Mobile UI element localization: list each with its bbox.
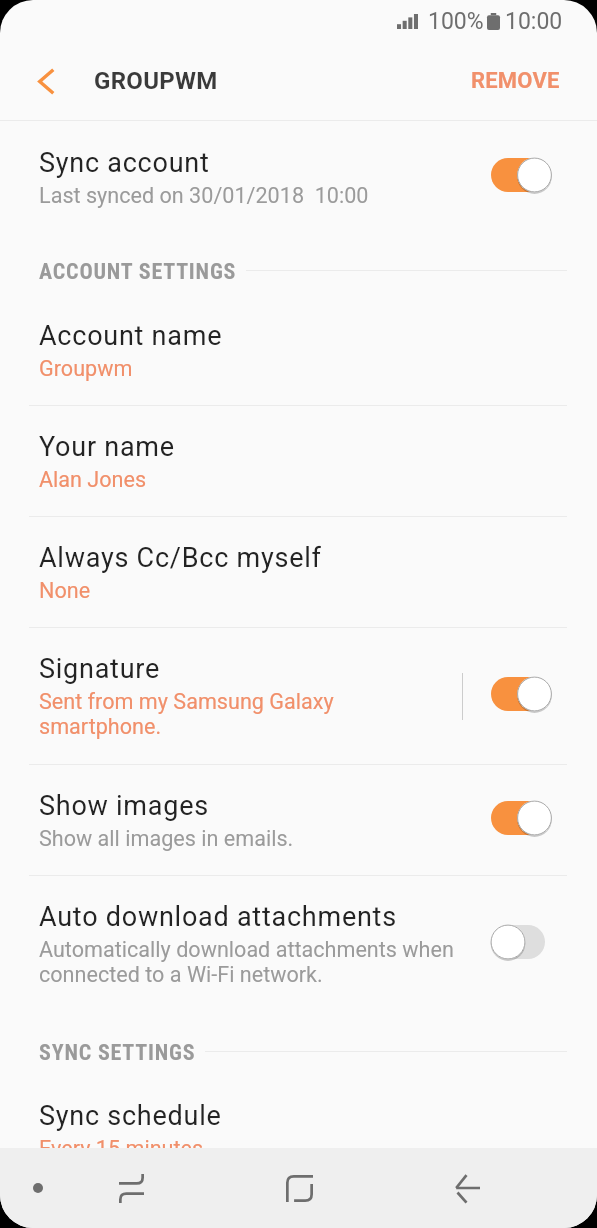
- staticText: 100%: [428, 8, 484, 35]
- button[interactable]: Hide keyboard: [13, 1163, 63, 1213]
- staticText: Last synced on 30/01/2018 10:00: [39, 183, 369, 208]
- button[interactable]: Home: [265, 1154, 333, 1222]
- staticText: Sent from my Samsung Galaxy smartphone.: [39, 689, 334, 739]
- staticText: ACCOUNT SETTINGS: [39, 259, 237, 285]
- staticText: Show images: [39, 790, 209, 822]
- staticText: None: [39, 578, 91, 603]
- staticText: Sync schedule: [39, 1100, 222, 1132]
- staticText: Show all images in emails.: [39, 826, 294, 851]
- staticText: Account name: [39, 320, 223, 352]
- button[interactable]: Sync schedule: [0, 1071, 597, 1194]
- staticText: Signature: [39, 653, 161, 685]
- button[interactable]: On: [491, 798, 553, 838]
- button[interactable]: Back: [433, 1154, 501, 1222]
- button[interactable]: Auto download attachments: [0, 876, 597, 1012]
- button[interactable]: On: [491, 155, 553, 195]
- staticText: Auto download attachments: [39, 901, 397, 933]
- button[interactable]: Your name: [0, 406, 597, 516]
- button[interactable]: Recent apps: [97, 1154, 165, 1222]
- staticText: Always Cc/Bcc myself: [39, 542, 322, 574]
- staticText: Every 15 minutes: [39, 1136, 204, 1161]
- staticText: SYNC SETTINGS: [39, 1040, 196, 1066]
- button[interactable]: Always Cc/Bcc myself: [0, 517, 597, 627]
- staticText: Alan Jones: [39, 467, 147, 492]
- staticText: Sync account: [39, 147, 210, 179]
- button[interactable]: Show images: [0, 765, 597, 875]
- staticText: Automatically download attachments when …: [39, 937, 454, 987]
- staticText: 10:00: [505, 8, 563, 35]
- staticText: Your name: [39, 431, 175, 463]
- button[interactable]: On: [491, 674, 553, 714]
- button[interactable]: Sync account: [0, 121, 597, 232]
- button[interactable]: Navigate up: [22, 57, 70, 105]
- staticText: REMOVE: [471, 68, 560, 94]
- staticText: Groupwm: [39, 356, 133, 381]
- button[interactable]: REMOVE: [432, 48, 597, 114]
- button[interactable]: Account name: [0, 291, 597, 405]
- button[interactable]: Off: [491, 922, 553, 962]
- staticText: GROUPWM: [94, 67, 218, 95]
- button[interactable]: Signature: [0, 628, 597, 764]
